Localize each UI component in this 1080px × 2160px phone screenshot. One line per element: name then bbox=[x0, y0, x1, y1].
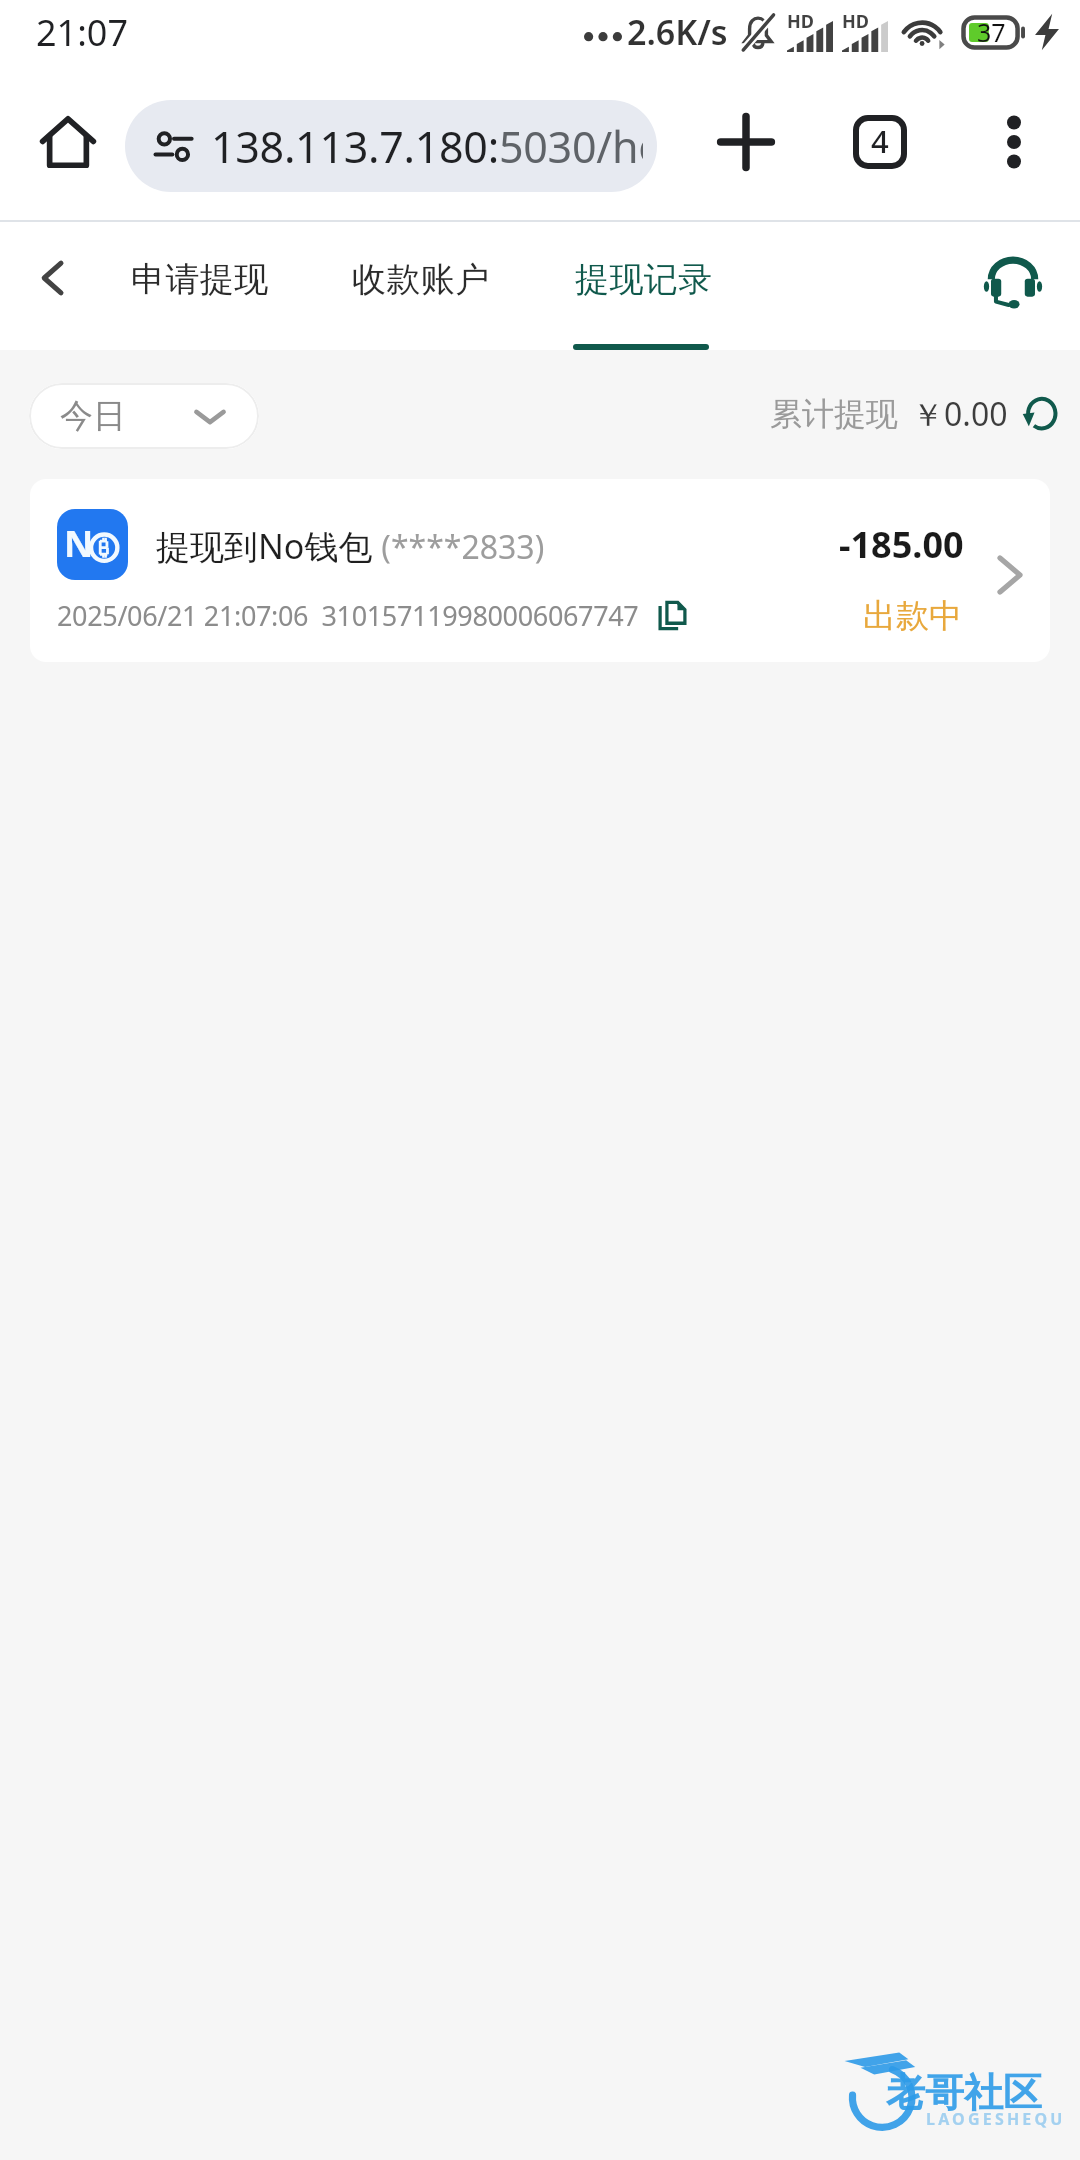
staticText: 5030/ho bbox=[499, 117, 643, 176]
staticText: 申请提现 bbox=[131, 258, 269, 301]
staticText: 提现到No钱包 bbox=[156, 523, 373, 569]
button[interactable]: New tab bbox=[700, 96, 792, 188]
button[interactable]: 申请提现 bbox=[131, 222, 281, 332]
staticText: LAOGESHEQU bbox=[926, 2108, 1066, 2130]
staticText: 21:07 bbox=[36, 8, 129, 57]
button[interactable]: 收款账户 bbox=[352, 222, 502, 332]
button[interactable]: Home bbox=[26, 100, 110, 184]
staticText: 2.6K/s bbox=[627, 9, 728, 55]
button[interactable]: Tabs bbox=[834, 96, 926, 188]
button[interactable]: N bbox=[30, 479, 1050, 662]
button[interactable]: Back bbox=[14, 239, 92, 317]
staticText: 4 bbox=[871, 120, 889, 162]
button[interactable]: 提现记录 bbox=[575, 222, 725, 332]
button[interactable]: 今日 bbox=[29, 383, 259, 449]
staticText: 收款账户 bbox=[352, 258, 490, 301]
staticText: 37 bbox=[977, 15, 1006, 49]
staticText: 138.113.7.180: bbox=[211, 117, 499, 176]
staticText: HD bbox=[787, 9, 814, 34]
button[interactable]: Customer support bbox=[971, 241, 1055, 325]
staticText: 今日 bbox=[60, 395, 126, 437]
staticText: (****2833) bbox=[373, 525, 545, 569]
staticText: 提现记录 bbox=[575, 258, 713, 301]
staticText: -185.00 bbox=[839, 520, 964, 569]
staticText: 累计提现 bbox=[770, 394, 898, 434]
staticText: ￥0.00 bbox=[912, 392, 1008, 436]
button[interactable]: 138.113.7.180: bbox=[125, 100, 657, 192]
button[interactable]: Copy bbox=[653, 596, 691, 634]
staticText: 出款中 bbox=[863, 595, 962, 637]
button[interactable]: More options bbox=[968, 96, 1060, 188]
staticText: 2025/06/21 21:07:06 31015711998000606774… bbox=[57, 597, 639, 634]
staticText: N bbox=[64, 519, 94, 568]
staticText: HD bbox=[842, 9, 869, 34]
staticText: 老哥社区 bbox=[886, 2068, 1042, 2117]
button[interactable]: Refresh bbox=[1018, 391, 1064, 437]
